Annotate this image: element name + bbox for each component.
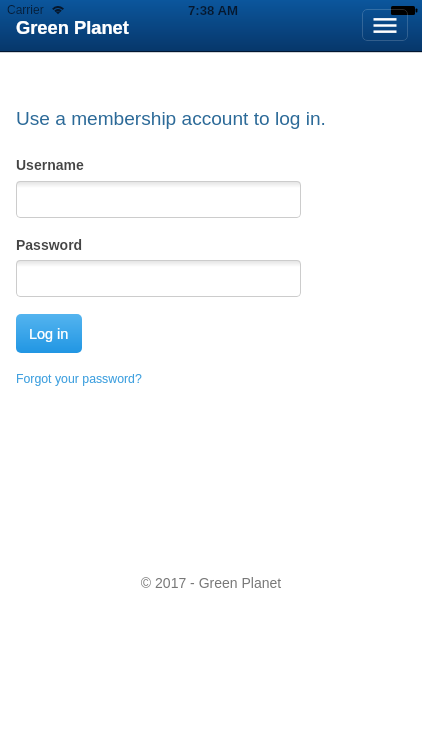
staticText: Green Planet [16,17,129,37]
staticText: Password [16,237,83,253]
staticText: Carrier [7,3,44,16]
staticText: Forgot your password? [16,372,142,386]
staticText: Use a membership account to log in. [16,108,326,129]
button[interactable]: Forgot your password? [16,372,142,386]
staticText: Username [16,157,84,173]
staticText: © 2017 - Green Planet [0,575,422,591]
staticText: 7:38 AM [188,3,239,18]
staticText: Log in [29,326,69,342]
button[interactable]: Open navigation menu [362,9,408,41]
button[interactable] [16,260,301,297]
button[interactable]: Log in [16,314,82,353]
button[interactable] [16,181,301,218]
